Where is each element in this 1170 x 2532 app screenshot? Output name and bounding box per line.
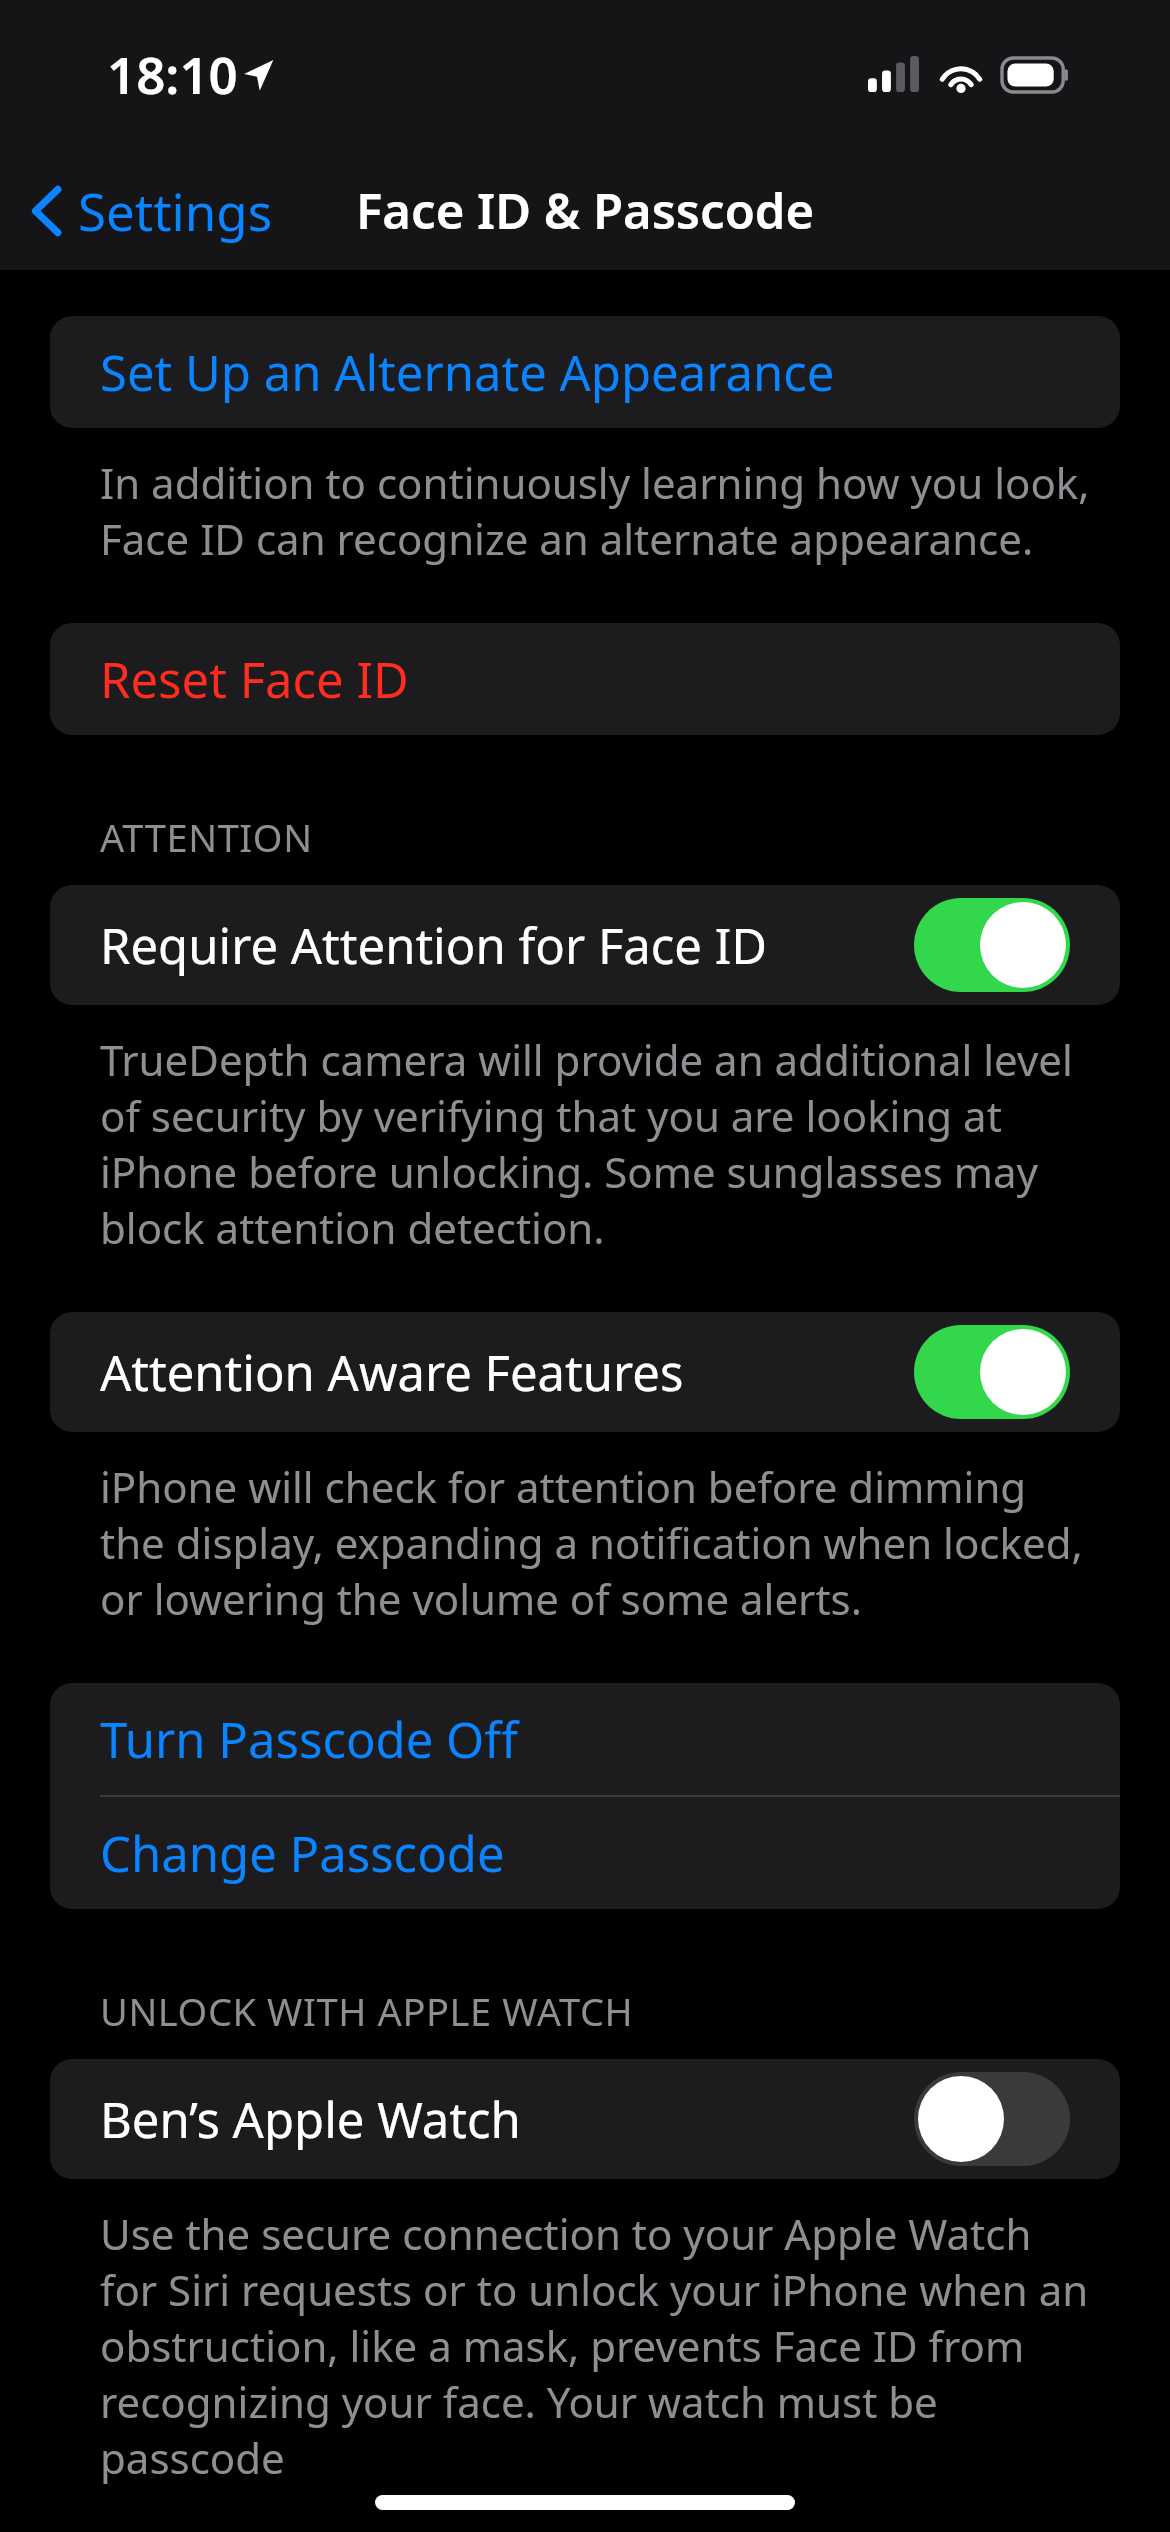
staticText: In addition to continuously learning how… (100, 454, 1090, 567)
button[interactable]: Reset Face ID (50, 623, 1120, 735)
staticText: Use the secure connection to your Apple … (100, 2205, 1090, 2486)
staticText: TrueDepth camera will provide an additio… (100, 1031, 1090, 1256)
button[interactable]: Ben’s Apple Watch (50, 2059, 1120, 2179)
staticText: Settings (78, 176, 273, 245)
staticText: Face ID & Passcode (356, 177, 815, 244)
button[interactable]: Attention Aware Features (50, 1312, 1120, 1432)
staticText: UNLOCK WITH APPLE WATCH (100, 1985, 634, 2037)
staticText: Change Passcode (100, 1820, 505, 1887)
staticText: Set Up an Alternate Appearance (100, 339, 835, 406)
staticText: iPhone will check for attention before d… (100, 1458, 1090, 1627)
button[interactable]: Require Attention for Face ID (50, 885, 1120, 1005)
staticText: Ben’s Apple Watch (100, 2086, 914, 2153)
staticText: Require Attention for Face ID (100, 912, 914, 979)
button[interactable]: Settings (0, 168, 289, 253)
staticText: Attention Aware Features (100, 1339, 914, 1406)
staticText: Reset Face ID (100, 646, 409, 713)
staticText: 18:10 (107, 39, 238, 108)
staticText: Turn Passcode Off (100, 1706, 519, 1773)
button[interactable]: Set Up an Alternate Appearance (50, 316, 1120, 428)
other: Toggle on (914, 1325, 1070, 1419)
other: Toggle off (914, 2072, 1070, 2166)
other: Toggle on (914, 898, 1070, 992)
button[interactable]: Change Passcode (50, 1797, 1120, 1909)
button[interactable]: Turn Passcode Off (50, 1683, 1120, 1795)
staticText: ATTENTION (100, 811, 313, 863)
